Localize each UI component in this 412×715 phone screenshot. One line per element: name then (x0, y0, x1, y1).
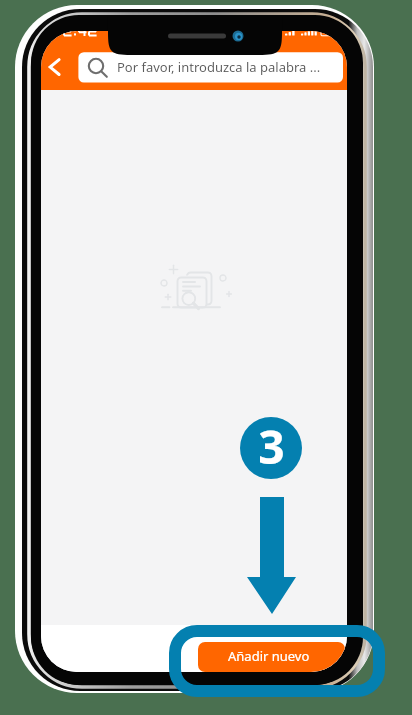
staticText: 3 (258, 415, 285, 477)
button[interactable]: Back (44, 52, 74, 86)
staticText: Añadir nuevo (228, 647, 310, 665)
staticText: Por favor, introduzca la palabra ... (117, 58, 321, 76)
button[interactable]: Añadir nuevo (198, 642, 340, 670)
button[interactable]: Por favor, introduzca la palabra ... (79, 52, 343, 82)
